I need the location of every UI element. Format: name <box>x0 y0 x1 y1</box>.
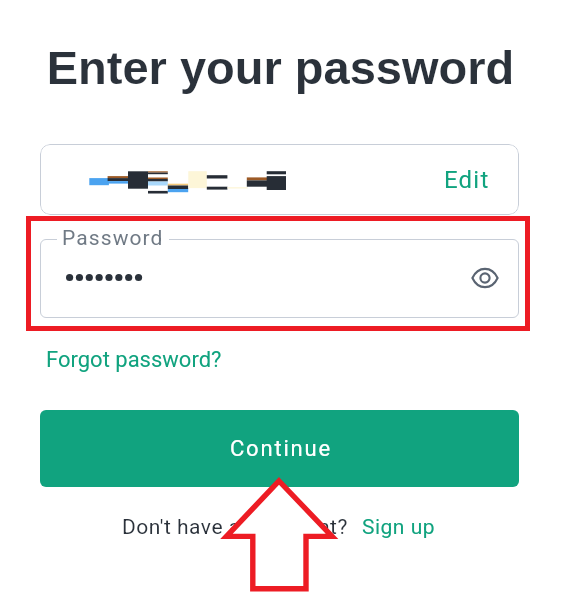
staticText: Continue <box>230 436 332 462</box>
staticText: Edit <box>444 166 490 194</box>
button[interactable]: Continue <box>40 410 519 487</box>
button[interactable]: Forgot password? <box>46 347 222 373</box>
button[interactable]: Show password <box>465 258 505 298</box>
staticText: Don't have an account? <box>122 515 348 540</box>
staticText: Password <box>62 226 164 251</box>
staticText: Enter your password <box>0 41 565 94</box>
staticText: Sign up <box>362 515 436 540</box>
button[interactable]: Sign up <box>362 515 436 540</box>
staticText: Forgot password? <box>46 347 222 373</box>
button[interactable]: Edit <box>444 166 490 194</box>
button[interactable]: Edit <box>40 144 519 215</box>
